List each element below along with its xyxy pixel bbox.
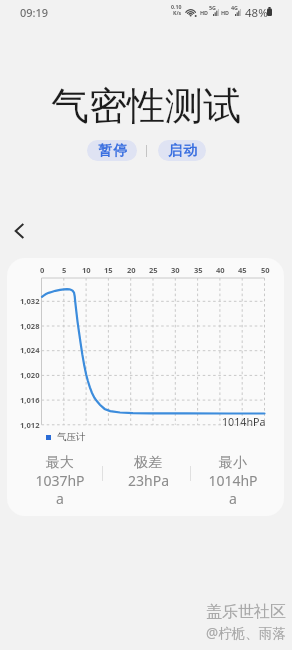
staticText: a (56, 489, 64, 508)
staticText: 1,032 (20, 296, 40, 306)
staticText: 1014hPa (222, 415, 266, 430)
staticText: 启动 (168, 142, 199, 160)
staticText: 1037hP (35, 471, 85, 490)
staticText: 50 (261, 265, 270, 275)
button[interactable]: Back (6, 218, 32, 244)
staticText: 气压计 (57, 431, 86, 443)
staticText: HD (221, 9, 230, 16)
staticText: 0.10 (171, 3, 182, 10)
staticText: 5 (62, 265, 67, 275)
staticText: 最大 (46, 454, 74, 472)
staticText: HD (200, 9, 209, 16)
staticText: 暂停 (98, 142, 129, 160)
staticText: 10 (82, 265, 91, 275)
button[interactable]: 暂停 (87, 140, 137, 161)
staticText: @柠栀、雨落 (206, 624, 286, 642)
staticText: 4G (231, 4, 238, 11)
staticText: 25 (149, 265, 158, 275)
staticText: 1,020 (20, 370, 40, 380)
staticText: 23hPa (128, 471, 169, 490)
staticText: 1,028 (20, 321, 40, 331)
staticText: 1,016 (20, 395, 40, 405)
staticText: K/s (173, 9, 182, 16)
staticText: 48% (245, 5, 268, 21)
staticText: 5G (209, 4, 216, 11)
staticText: 45 (238, 265, 247, 275)
staticText: 09:19 (20, 5, 49, 20)
staticText: a (229, 489, 237, 508)
staticText: 0 (40, 265, 45, 275)
staticText: 盖乐世社区 (206, 602, 286, 622)
staticText: 1014hP (208, 471, 258, 490)
staticText: 40 (216, 265, 225, 275)
staticText: 35 (194, 265, 203, 275)
staticText: 极差 (134, 454, 162, 472)
staticText: 20 (127, 265, 136, 275)
staticText: 30 (171, 265, 180, 275)
staticText: 1,012 (20, 420, 40, 430)
staticText: 最小 (219, 454, 247, 472)
staticText: 1,024 (20, 345, 40, 355)
button[interactable]: 启动 (158, 140, 206, 161)
staticText: 气密性测试 (51, 82, 241, 130)
staticText: 15 (104, 265, 113, 275)
